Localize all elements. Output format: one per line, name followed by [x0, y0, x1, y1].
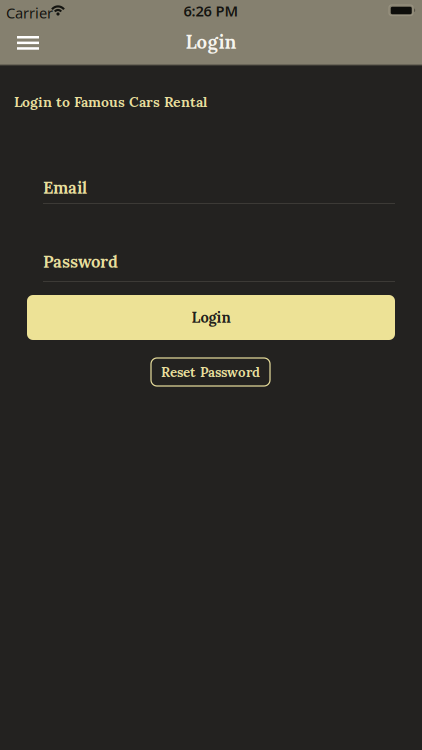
staticText: Password	[43, 251, 118, 272]
staticText: Login to Famous Cars Rental	[14, 93, 207, 111]
staticText: Login	[185, 30, 236, 54]
button[interactable]: Reset Password	[151, 358, 270, 386]
staticText: Login	[191, 308, 230, 327]
button[interactable]: Menu	[0, 0, 47, 58]
staticText: Carrier	[6, 3, 53, 22]
staticText: 6:26 PM	[183, 1, 238, 20]
staticText: Reset Password	[161, 363, 260, 381]
button[interactable]: Login	[27, 295, 395, 340]
staticText: Email	[43, 177, 87, 198]
